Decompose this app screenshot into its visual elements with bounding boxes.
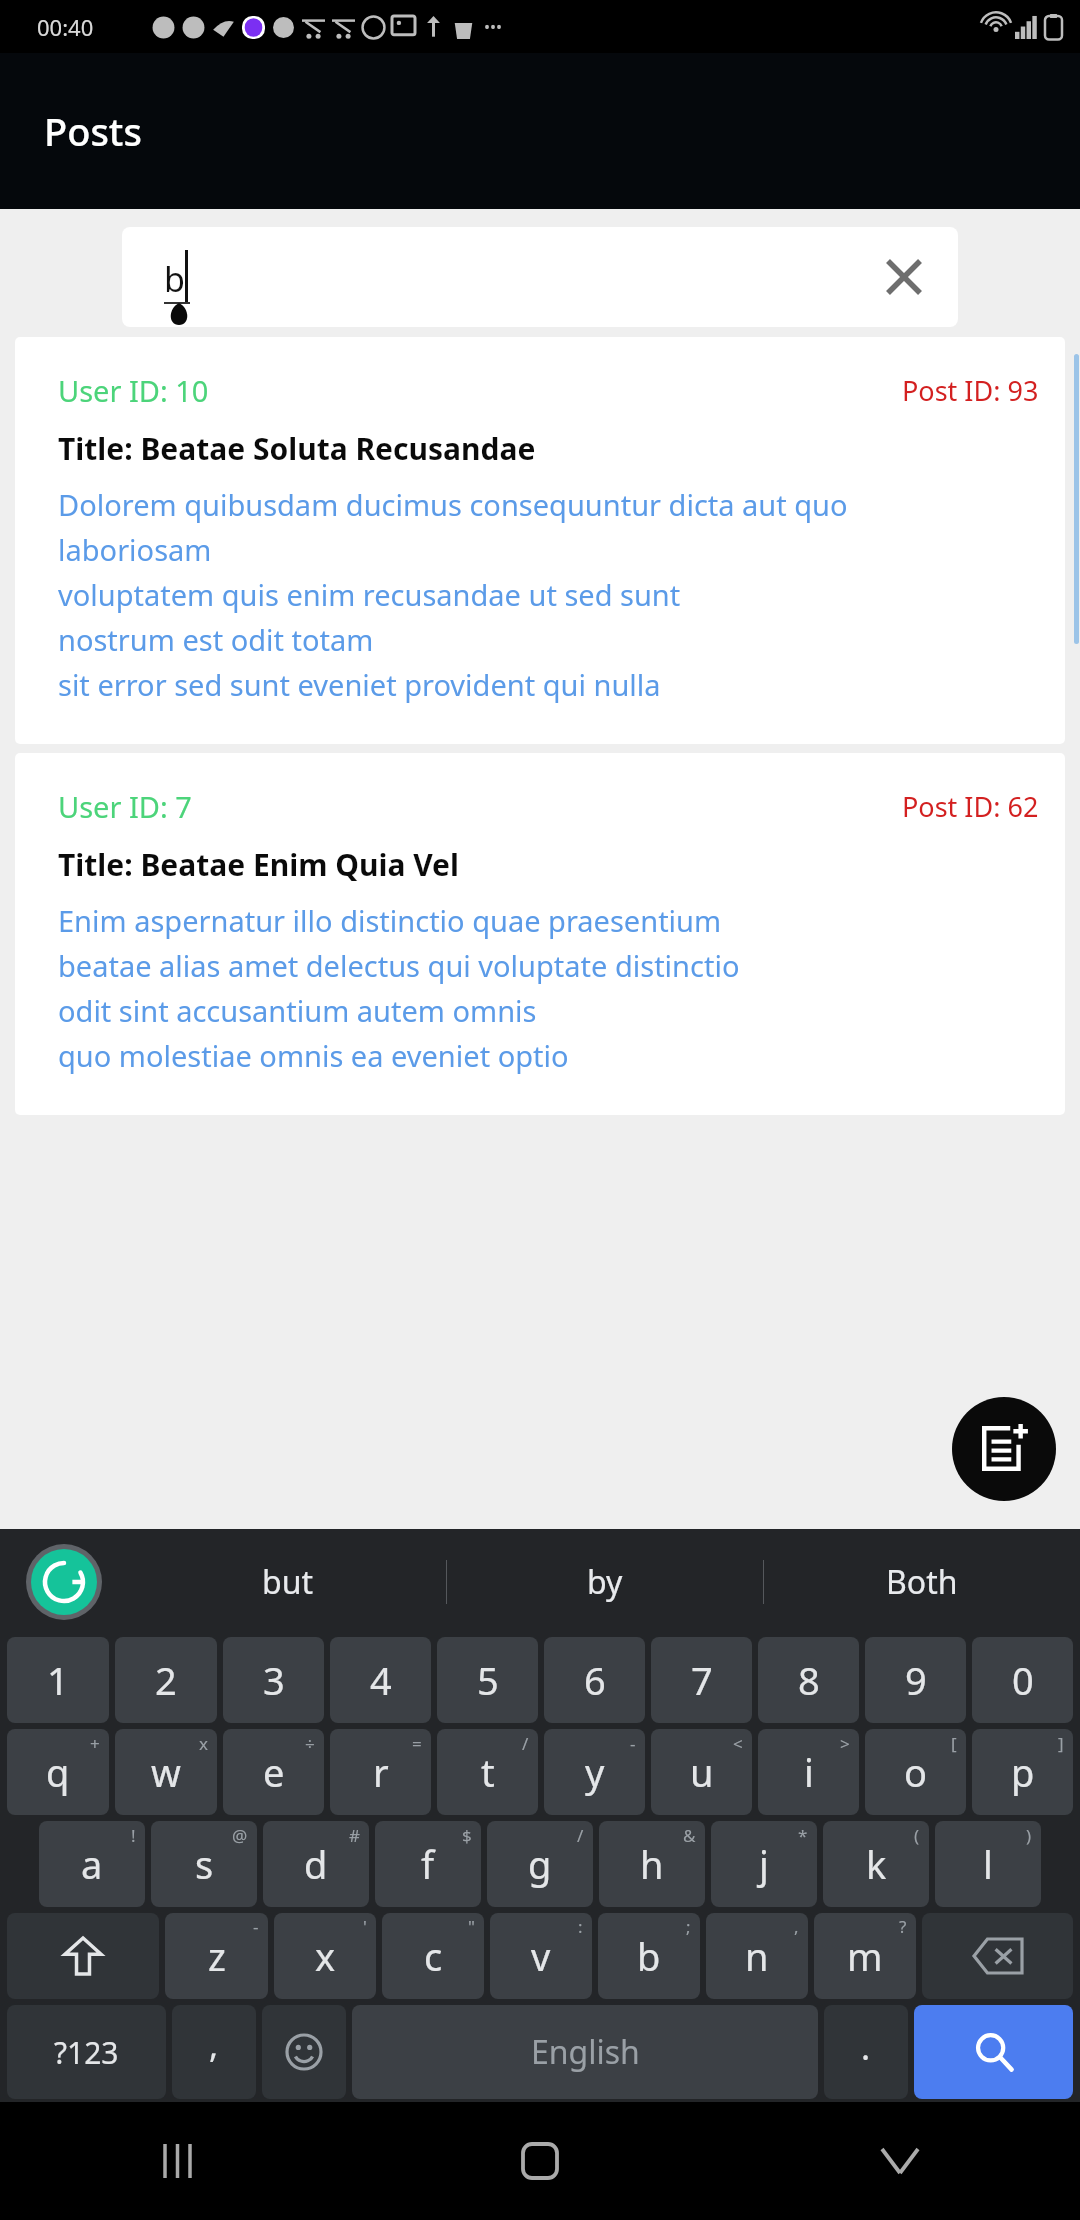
button[interactable]: x (274, 1913, 376, 1999)
button[interactable]: c (382, 1913, 484, 1999)
staticText: & (683, 1824, 696, 1847)
staticText: laboriosam (58, 530, 212, 569)
staticText: 9 (905, 1654, 927, 1706)
button[interactable]: . (824, 2005, 908, 2099)
button[interactable]: 2 (115, 1637, 217, 1723)
button[interactable]: m (814, 1913, 916, 1999)
button[interactable]: a (39, 1821, 145, 1907)
button[interactable]: b (122, 227, 958, 327)
button[interactable]: 5 (437, 1637, 538, 1723)
staticText: quo molestiae omnis ea eveniet optio (58, 1036, 569, 1075)
button[interactable]: Emoji (262, 2005, 346, 2099)
staticText: ? (899, 1915, 907, 1938)
staticText: Both (886, 1560, 958, 1604)
button[interactable]: f (375, 1821, 481, 1907)
button[interactable]: Shift (7, 1913, 159, 1999)
staticText: 2 (155, 1654, 177, 1706)
button[interactable]: , (172, 2005, 256, 2099)
button[interactable]: Create post (952, 1397, 1056, 1501)
staticText: User ID: 10 (58, 371, 209, 410)
staticText: 7 (691, 1654, 713, 1706)
staticText: j (759, 1838, 769, 1890)
button[interactable]: b (598, 1913, 700, 1999)
button[interactable]: i (758, 1729, 859, 1815)
button[interactable]: h (599, 1821, 705, 1907)
button[interactable]: r (330, 1729, 431, 1815)
button[interactable]: Home (360, 2102, 720, 2220)
staticText: beatae alias amet delectus qui voluptate… (58, 946, 740, 985)
staticText: f (421, 1838, 435, 1890)
button[interactable]: u (651, 1729, 752, 1815)
staticText: g (528, 1838, 552, 1890)
button[interactable]: j (711, 1821, 817, 1907)
staticText: $ (462, 1824, 472, 1847)
button[interactable]: l (935, 1821, 1041, 1907)
button[interactable]: Clear (876, 249, 932, 305)
button[interactable]: Backspace (922, 1913, 1073, 1999)
button[interactable]: 4 (330, 1637, 431, 1723)
button[interactable]: 8 (758, 1637, 859, 1723)
staticText: 5 (477, 1654, 499, 1706)
staticText: # (349, 1824, 360, 1847)
staticText: " (468, 1915, 475, 1938)
staticText: , (209, 2022, 219, 2068)
button[interactable]: 1 (7, 1637, 109, 1723)
button[interactable]: Hide keyboard (720, 2102, 1080, 2220)
button[interactable]: v (490, 1913, 592, 1999)
staticText: [ (951, 1732, 957, 1755)
staticText: ••• (484, 16, 503, 38)
button[interactable]: User ID: 7 (15, 753, 1065, 1115)
staticText: User ID: 7 (58, 787, 192, 826)
button[interactable]: q (7, 1729, 109, 1815)
staticText: - (253, 1915, 259, 1938)
button[interactable]: y (544, 1729, 645, 1815)
staticText: Dolorem quibusdam ducimus consequuntur d… (58, 485, 848, 524)
staticText: ! (131, 1824, 136, 1847)
button[interactable]: e (223, 1729, 324, 1815)
button[interactable]: Grammarly (26, 1544, 102, 1620)
button[interactable]: User ID: 10 (15, 337, 1065, 744)
button[interactable]: Both (763, 1529, 1080, 1634)
button[interactable]: w (115, 1729, 217, 1815)
button[interactable]: Recents (0, 2102, 360, 2220)
staticText: ' (363, 1915, 367, 1938)
button[interactable]: d (263, 1821, 369, 1907)
staticText: = (412, 1732, 422, 1755)
staticText: @ (232, 1824, 248, 1847)
staticText: by (587, 1560, 623, 1604)
button[interactable]: 3 (223, 1637, 324, 1723)
button[interactable]: o (865, 1729, 966, 1815)
button[interactable]: Search (914, 2005, 1073, 2099)
button[interactable]: 7 (651, 1637, 752, 1723)
button[interactable]: g (487, 1821, 593, 1907)
button[interactable]: 9 (865, 1637, 966, 1723)
staticText: b (164, 256, 185, 302)
staticText: 1 (47, 1654, 69, 1706)
staticText: / (522, 1732, 529, 1755)
staticText: ÷ (305, 1732, 315, 1755)
staticText: Title: Beatae Soluta Recusandae (58, 428, 536, 469)
staticText: + (90, 1732, 100, 1755)
button[interactable]: z (165, 1913, 268, 1999)
staticText: b (637, 1930, 661, 1982)
staticText: p (1011, 1746, 1035, 1798)
button[interactable]: ?123 (7, 2005, 166, 2099)
staticText: > (840, 1732, 850, 1755)
button[interactable]: t (437, 1729, 538, 1815)
staticText: k (866, 1838, 887, 1890)
button[interactable]: by (446, 1529, 763, 1634)
staticText: a (81, 1838, 103, 1890)
staticText: odit sint accusantium autem omnis (58, 991, 537, 1030)
button[interactable]: p (972, 1729, 1073, 1815)
staticText: , (794, 1915, 799, 1938)
button[interactable]: English (352, 2005, 818, 2099)
button[interactable]: k (823, 1821, 929, 1907)
staticText: ( (914, 1824, 920, 1847)
button[interactable]: 6 (544, 1637, 645, 1723)
button[interactable]: s (151, 1821, 257, 1907)
button[interactable]: 0 (972, 1637, 1073, 1723)
button[interactable]: n (706, 1913, 808, 1999)
staticText: 0 (1012, 1654, 1034, 1706)
button[interactable]: but (130, 1529, 446, 1634)
staticText: sit error sed sunt eveniet provident qui… (58, 665, 661, 704)
